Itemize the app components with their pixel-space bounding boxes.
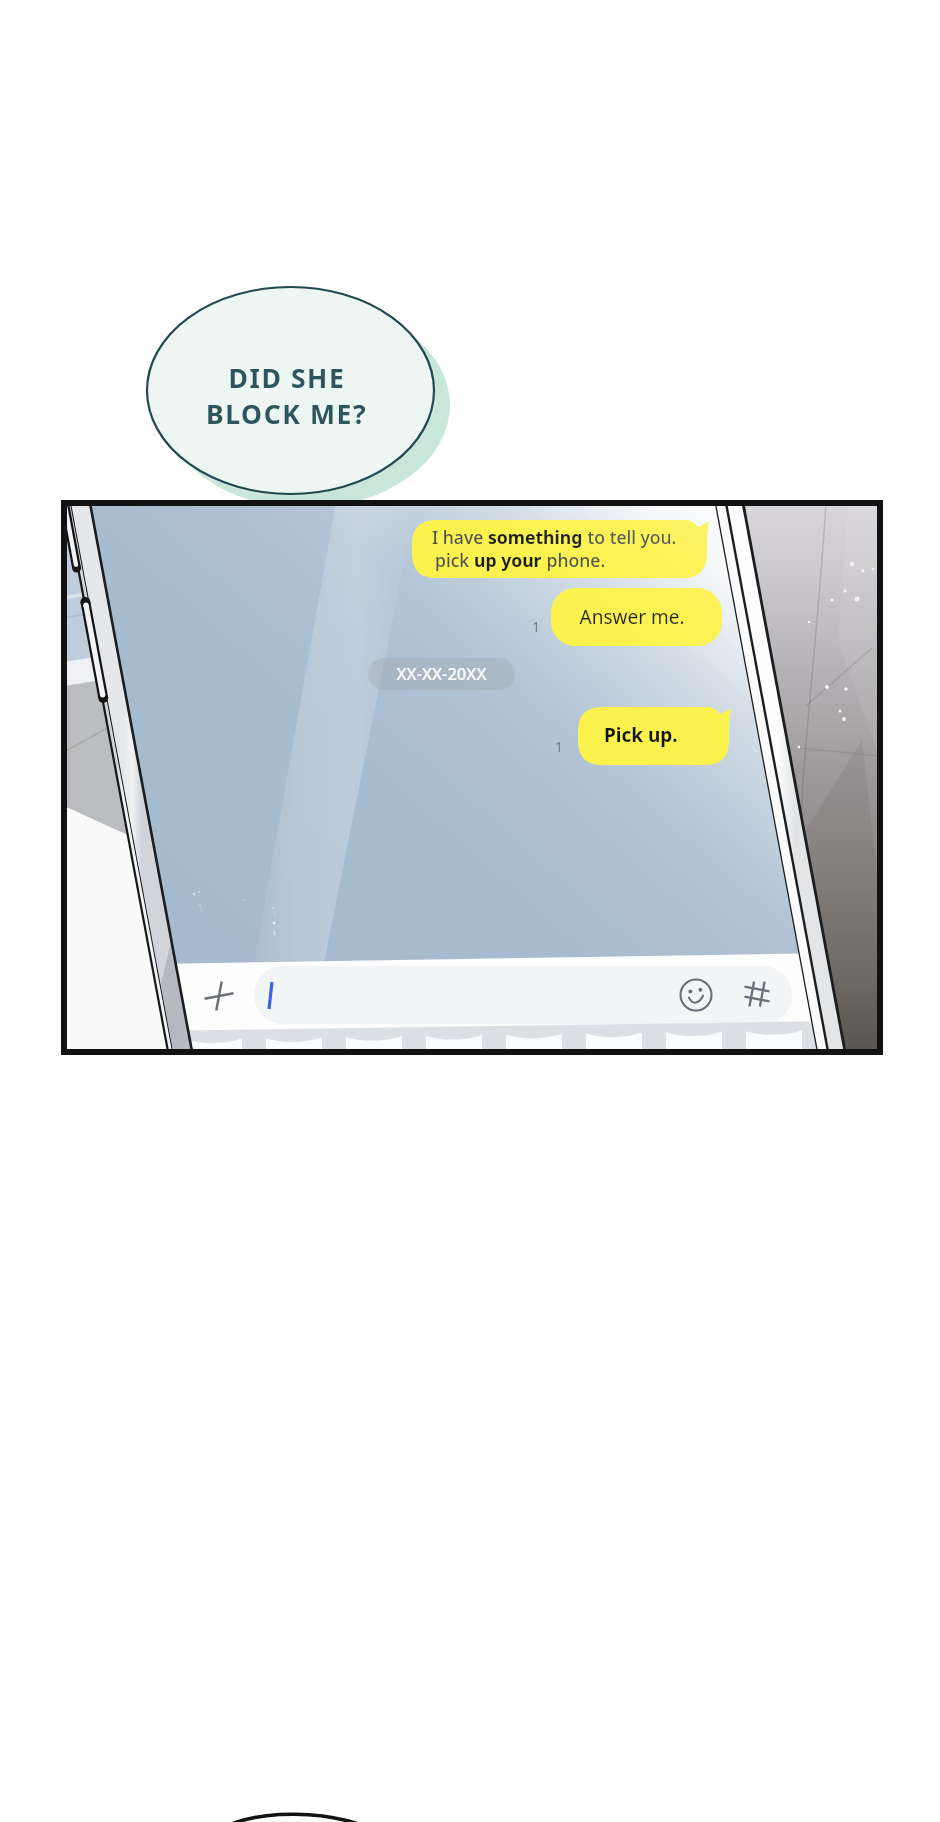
button[interactable]: Answer me. bbox=[551, 588, 722, 646]
button[interactable]: Emoji bbox=[674, 972, 720, 1020]
button[interactable]: Message input field bbox=[254, 966, 678, 1024]
button[interactable]: Add attachment bbox=[196, 972, 242, 1020]
button[interactable]: Stickers bbox=[736, 972, 780, 1020]
button[interactable]: Pick up. bbox=[578, 700, 732, 765]
button[interactable]: I have something to tell you. pick up yo… bbox=[411, 514, 717, 580]
